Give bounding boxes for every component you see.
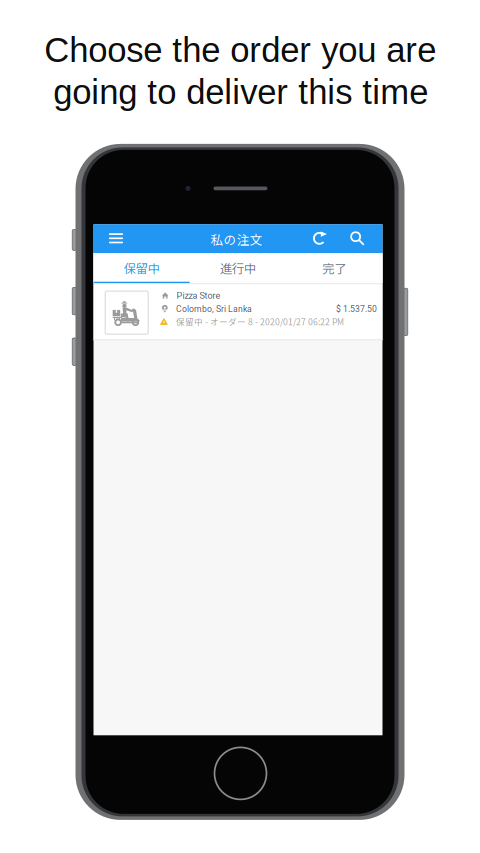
- staticText: 進行中: [220, 259, 256, 277]
- button[interactable]: 完了: [286, 253, 382, 283]
- staticText: 保留中 - オーダー 8 - 2020/01/27 06:22 PM: [176, 315, 344, 328]
- button[interactable]: Refresh: [306, 224, 334, 253]
- staticText: 私の注文: [210, 230, 262, 248]
- staticText: 完了: [322, 259, 346, 277]
- button[interactable]: 進行中: [190, 253, 286, 283]
- staticText: Colombo, Sri Lanka: [176, 304, 252, 314]
- button[interactable]: 保留中: [93, 253, 190, 283]
- staticText: $ 1.537.50: [336, 304, 377, 314]
- button[interactable]: Pizza Store: [93, 284, 382, 340]
- staticText: Choose the order you are: [44, 31, 436, 69]
- staticText: 保留中: [124, 259, 160, 277]
- staticText: going to deliver this time: [53, 73, 428, 111]
- staticText: Pizza Store: [176, 290, 220, 301]
- button[interactable]: Menu: [99, 224, 133, 253]
- button[interactable]: Search: [343, 224, 371, 253]
